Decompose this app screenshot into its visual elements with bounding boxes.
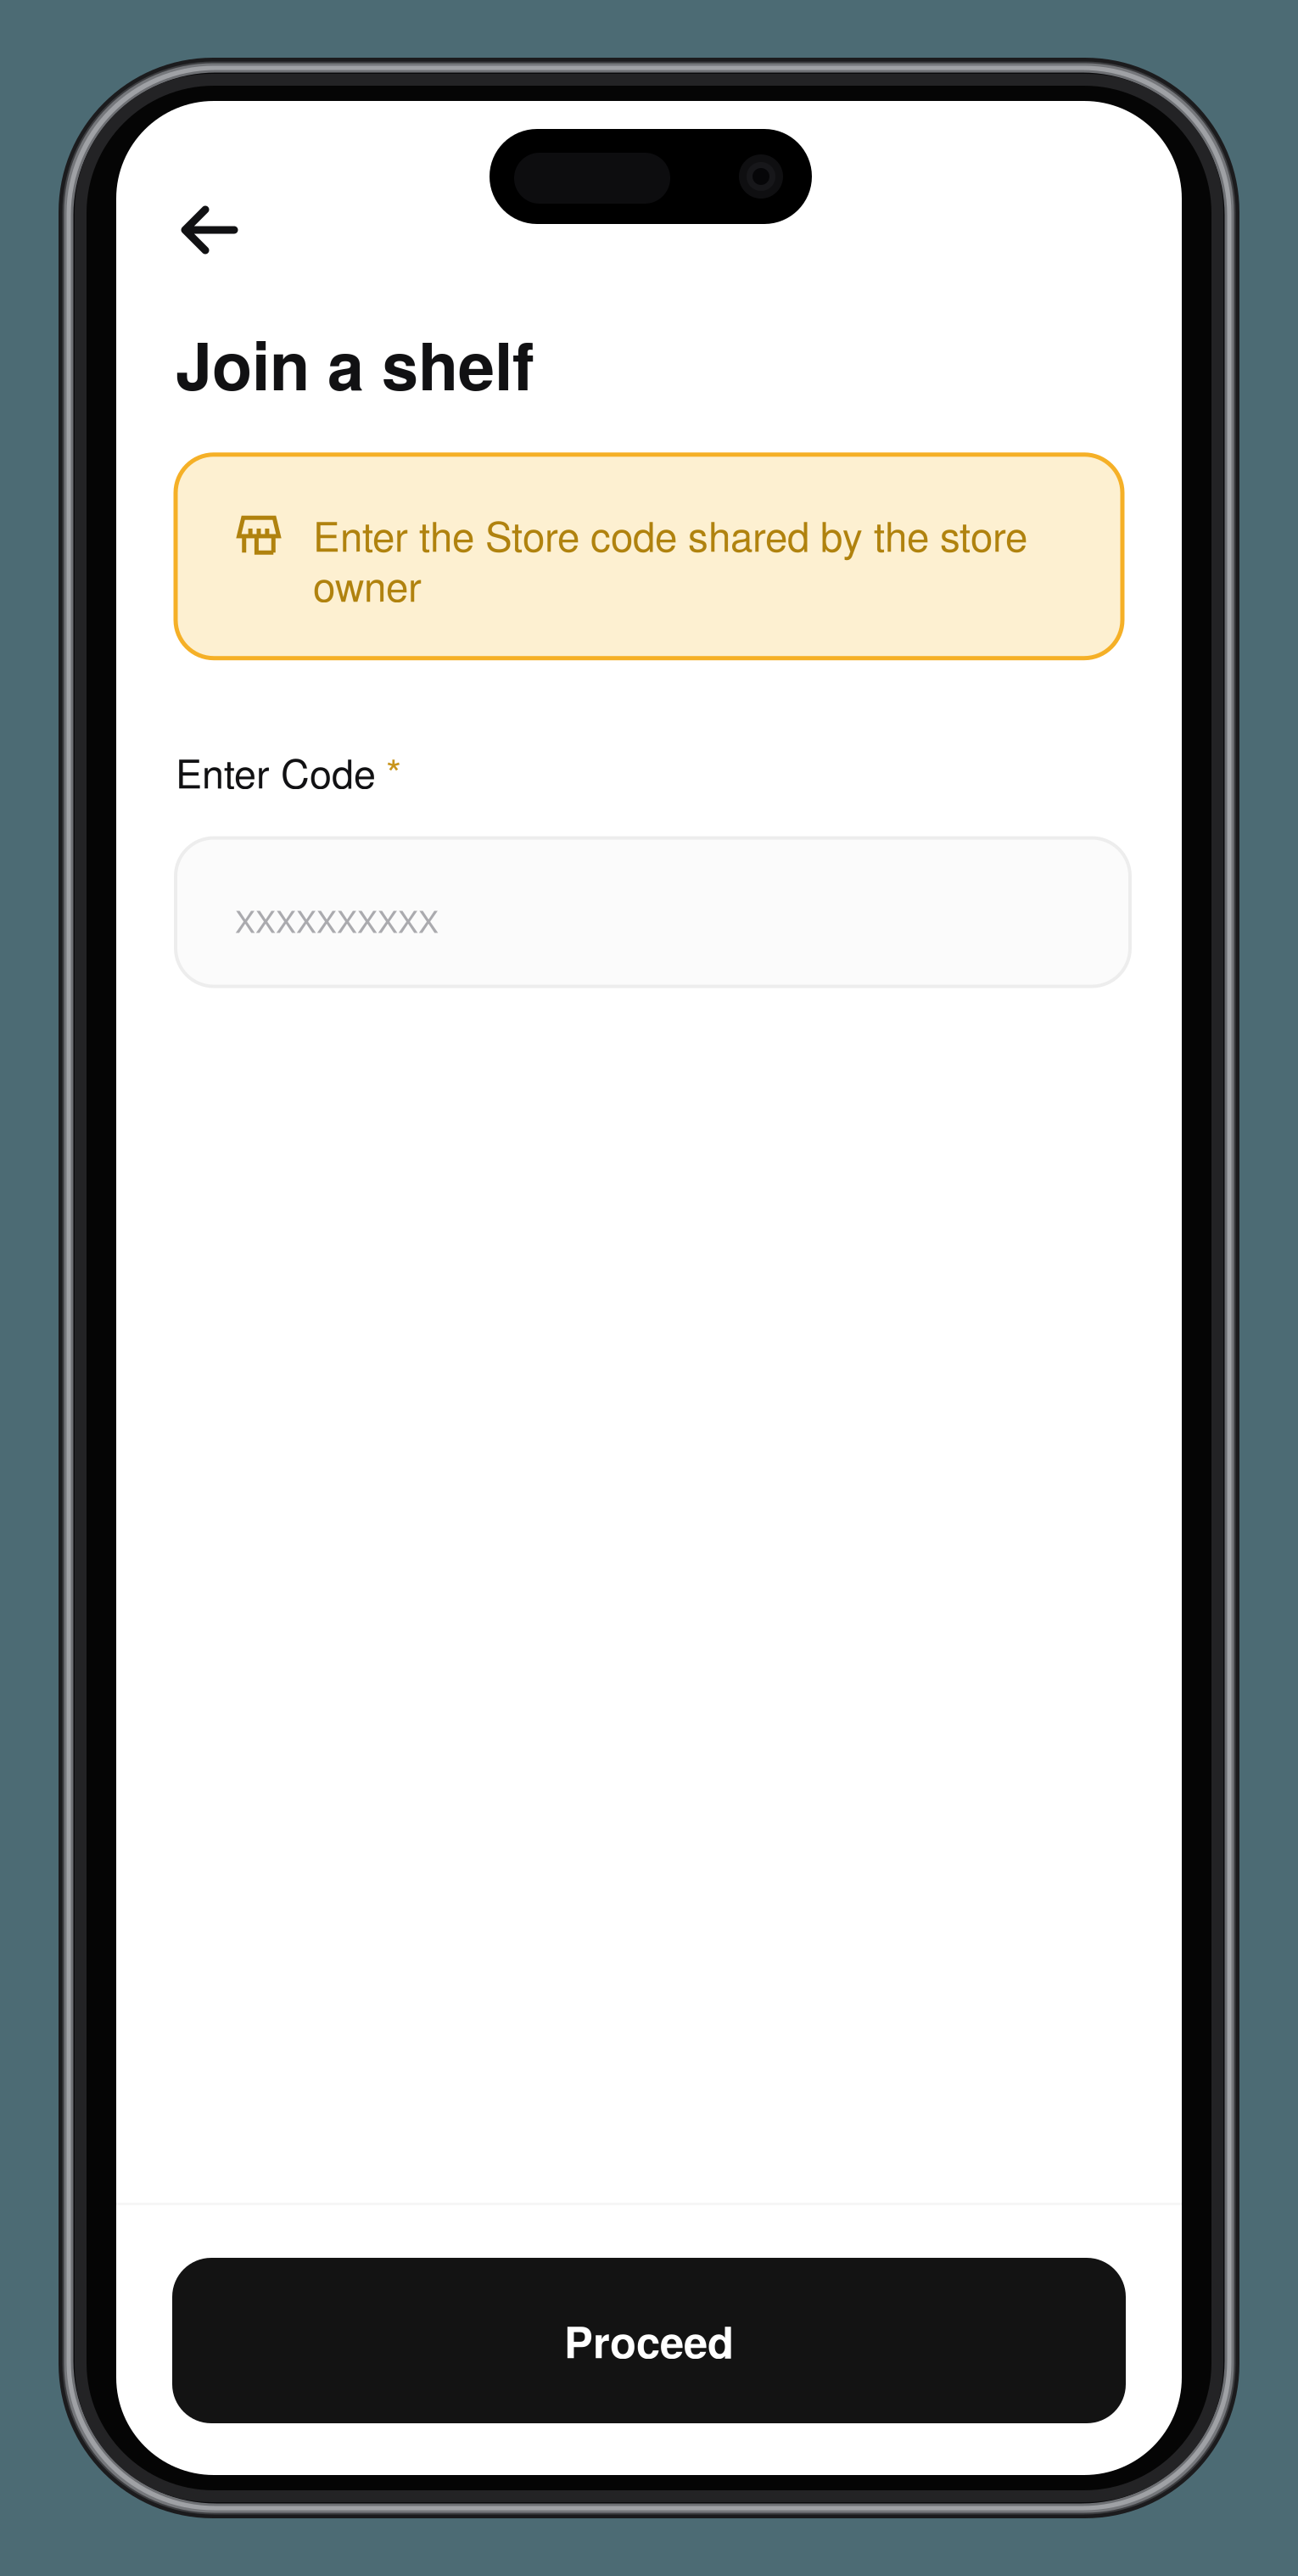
staticText: XXXXXXXXXX xyxy=(235,898,439,942)
staticText: Enter the Store code shared by the store… xyxy=(313,505,1027,613)
staticText: Proceed xyxy=(564,2310,734,2371)
staticText: Join a shelf xyxy=(176,316,534,410)
staticText: Enter Code xyxy=(176,743,376,800)
button[interactable]: Back xyxy=(148,183,270,277)
button[interactable]: Proceed xyxy=(172,2258,1126,2423)
staticText: * xyxy=(386,743,401,800)
